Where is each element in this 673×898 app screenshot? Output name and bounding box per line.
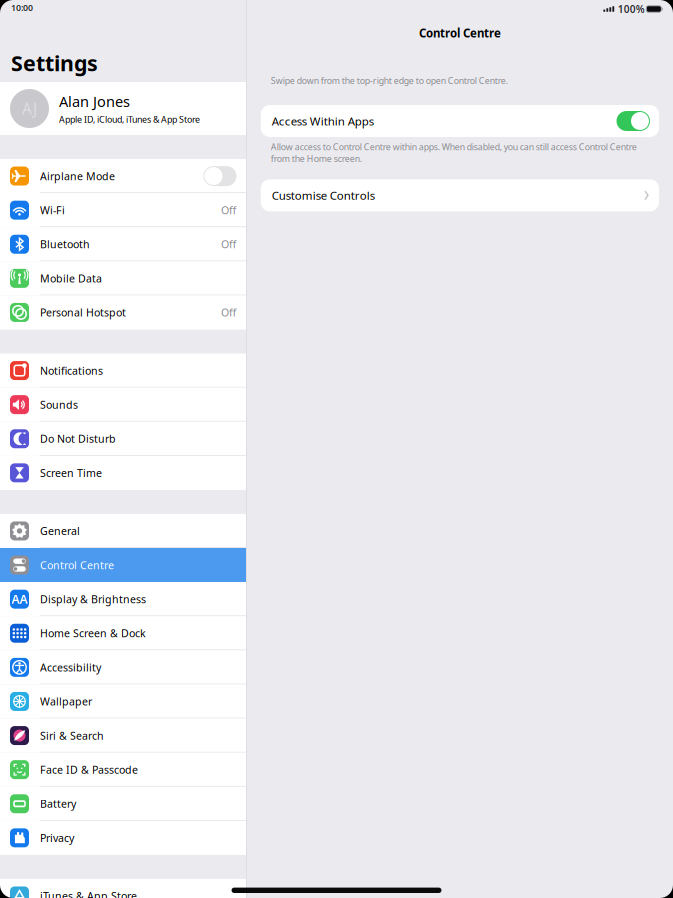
staticText: Battery	[40, 797, 76, 811]
button[interactable]: Do Not Disturb	[0, 422, 246, 456]
button[interactable]: Notifications	[0, 353, 246, 388]
staticText: Control Centre	[40, 558, 114, 572]
button[interactable]: Sounds	[0, 388, 246, 422]
button[interactable]: Bluetooth	[0, 227, 246, 261]
staticText: Customise Controls	[272, 188, 375, 203]
staticText: Off	[221, 305, 236, 319]
staticText: Bluetooth	[40, 237, 90, 251]
staticText: Do Not Disturb	[40, 432, 116, 446]
staticText: Face ID & Passcode	[40, 763, 138, 777]
button[interactable]: AJ	[0, 82, 246, 135]
staticText: Display & Brightness	[40, 592, 146, 606]
button[interactable]: Face ID & Passcode	[0, 753, 246, 787]
staticText: Siri & Search	[40, 728, 104, 743]
button[interactable]: General	[0, 514, 246, 548]
staticText: Apple ID, iCloud, iTunes & App Store	[59, 113, 200, 125]
button[interactable]: Wallpaper	[0, 684, 246, 718]
staticText: Personal Hotspot	[40, 305, 126, 319]
staticText: Mobile Data	[40, 271, 102, 285]
button[interactable]: Accessibility	[0, 650, 246, 684]
staticText: Privacy	[40, 831, 74, 845]
button[interactable]: Home Screen & Dock	[0, 616, 246, 650]
staticText: Off	[221, 203, 236, 217]
staticText: Swipe down from the top-right edge to op…	[271, 75, 508, 86]
button[interactable]: Mobile Data	[0, 261, 246, 295]
staticText: AJ	[22, 98, 37, 119]
staticText: Airplane Mode	[40, 169, 115, 183]
button[interactable]: Personal Hotspot	[0, 295, 246, 329]
staticText: iTunes & App Store	[40, 889, 137, 898]
staticText: Settings	[11, 49, 98, 77]
staticText: 10:00	[11, 2, 33, 13]
staticText: AA	[11, 591, 27, 607]
staticText: Sounds	[40, 398, 78, 412]
staticText: Access Within Apps	[272, 113, 374, 129]
button[interactable]: Access Within Apps	[261, 105, 659, 137]
staticText: Control Centre	[419, 25, 501, 41]
button[interactable]: Control Centre	[0, 548, 246, 582]
button[interactable]: AA	[0, 582, 246, 616]
button[interactable]: Battery	[0, 787, 246, 821]
button[interactable]: iTunes & App Store	[0, 879, 246, 898]
staticText: Allow access to Control Centre within ap…	[271, 141, 637, 164]
staticText: Screen Time	[40, 466, 102, 480]
staticText: Off	[221, 237, 236, 251]
button[interactable]: Wi-Fi	[0, 193, 246, 227]
button[interactable]: Siri & Search	[0, 718, 246, 753]
button[interactable]: Privacy	[0, 821, 246, 855]
staticText: General	[40, 524, 80, 538]
staticText: Wallpaper	[40, 694, 92, 708]
staticText: Notifications	[40, 363, 103, 378]
button[interactable]: Customise Controls	[261, 179, 659, 211]
button[interactable]: Airplane Mode	[0, 159, 246, 193]
staticText: Home Screen & Dock	[40, 626, 146, 640]
staticText: 100%	[618, 2, 645, 16]
button[interactable]: Screen Time	[0, 456, 246, 490]
staticText: Wi-Fi	[40, 203, 65, 217]
staticText: Alan Jones	[59, 92, 130, 111]
staticText: Accessibility	[40, 660, 101, 674]
